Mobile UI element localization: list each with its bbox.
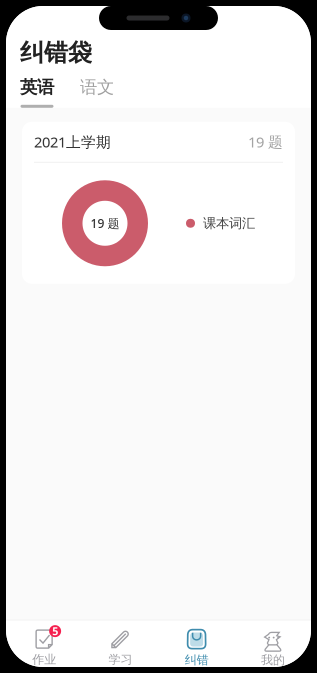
staticText: 英语 [20,76,54,98]
staticText: 作业 [32,652,56,667]
staticText: 课本词汇 [203,215,255,231]
staticText: 纠错 [185,653,209,667]
staticText: 我的 [261,653,285,667]
button[interactable]: 我的 [235,630,311,667]
staticText: 5 [52,624,58,638]
staticText: 学习 [108,652,132,667]
button[interactable]: 学习 [82,630,158,667]
staticText: 2021上学期 [34,132,111,151]
button[interactable]: 纠错 [158,630,235,667]
staticText: 语文 [80,76,114,98]
staticText: 19 题 [248,132,283,151]
staticText: 纠错袋 [20,38,92,67]
staticText: 19 题 [90,215,119,231]
button[interactable]: 5 [6,630,82,667]
